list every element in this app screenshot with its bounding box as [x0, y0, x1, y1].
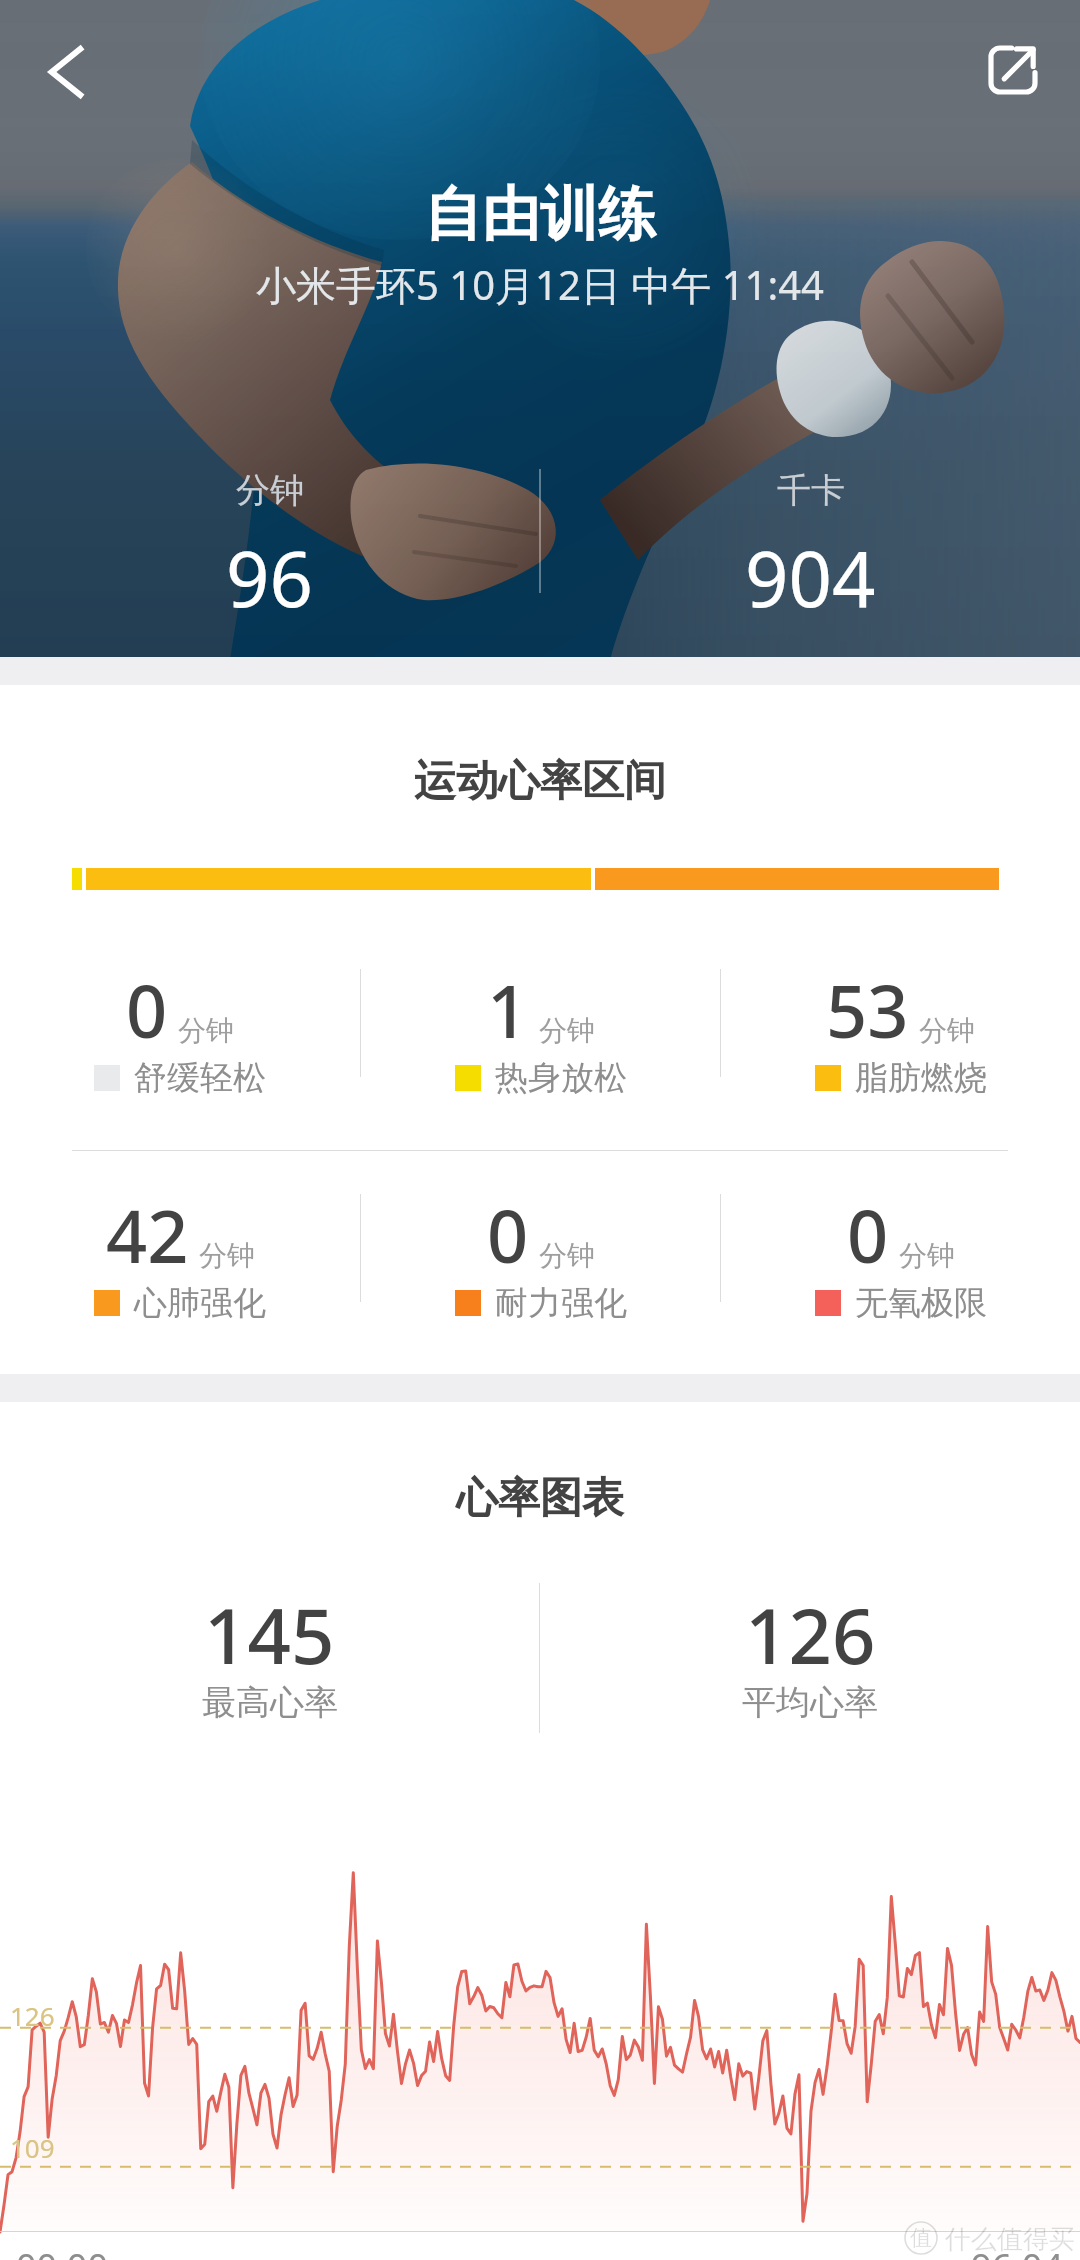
button[interactable]: Share	[971, 28, 1055, 112]
staticText: 分钟	[236, 469, 304, 512]
button[interactable]: 53	[721, 961, 1080, 1121]
staticText: 分钟	[539, 1238, 595, 1273]
staticText: 舒缓轻松	[134, 1057, 266, 1099]
staticText: 什么值得买	[938, 2220, 1075, 2256]
button[interactable]: 145	[0, 1583, 539, 1730]
staticText: 无氧极限	[855, 1282, 987, 1324]
button[interactable]: 0	[361, 1186, 720, 1346]
staticText: 自由训练	[424, 178, 656, 251]
staticText: 1	[487, 961, 529, 1051]
staticText: 42	[106, 1186, 189, 1276]
staticText: 分钟	[178, 1013, 234, 1048]
staticText: 最高心率	[202, 1681, 338, 1724]
staticText: 千卡	[777, 469, 845, 512]
staticText: 0	[126, 961, 168, 1051]
staticText: 值	[910, 2224, 932, 2252]
staticText: 热身放松	[495, 1057, 627, 1099]
staticText: 0	[847, 1186, 889, 1276]
button[interactable]: Back	[24, 30, 108, 114]
button[interactable]: 42	[0, 1186, 360, 1346]
staticText: 运动心率区间	[0, 755, 1080, 808]
staticText: 904	[745, 526, 876, 630]
staticText: 145	[204, 1583, 335, 1687]
staticText: 分钟	[899, 1238, 955, 1273]
staticText: 小米手环5 10月12日 中午 11:44	[256, 257, 824, 312]
button[interactable]: 126	[540, 1583, 1080, 1730]
button[interactable]: 1	[361, 961, 720, 1121]
staticText: 96:04	[971, 2242, 1064, 2260]
staticText: 分钟	[539, 1013, 595, 1048]
button[interactable]: 0	[721, 1186, 1080, 1346]
staticText: 53	[826, 961, 909, 1051]
staticText: 脂肪燃烧	[855, 1057, 987, 1099]
staticText: 分钟	[199, 1238, 255, 1273]
staticText: 分钟	[919, 1013, 975, 1048]
staticText: 126	[745, 1583, 876, 1687]
staticText: 00:00	[16, 2242, 109, 2260]
staticText: 平均心率	[742, 1681, 878, 1724]
staticText: 0	[487, 1186, 529, 1276]
staticText: 心肺强化	[134, 1282, 266, 1324]
staticText: 耐力强化	[495, 1282, 627, 1324]
staticText: 96	[226, 526, 313, 630]
staticText: 109	[10, 2130, 55, 2165]
button[interactable]: 0	[0, 961, 360, 1121]
staticText: 126	[10, 1998, 55, 2033]
staticText: 心率图表	[0, 1472, 1080, 1525]
